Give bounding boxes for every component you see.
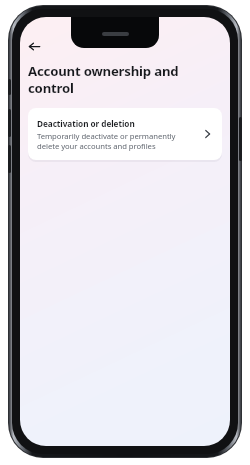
staticText: Temporarily deactivate or permanently de… [37, 131, 196, 151]
staticText: Account ownership and control [28, 62, 196, 97]
button[interactable]: Open Deactivation or deletion [200, 127, 214, 141]
staticText: Deactivation or deletion [37, 118, 135, 129]
button[interactable]: Back [23, 35, 45, 57]
button[interactable]: Deactivation or deletion [28, 108, 222, 160]
